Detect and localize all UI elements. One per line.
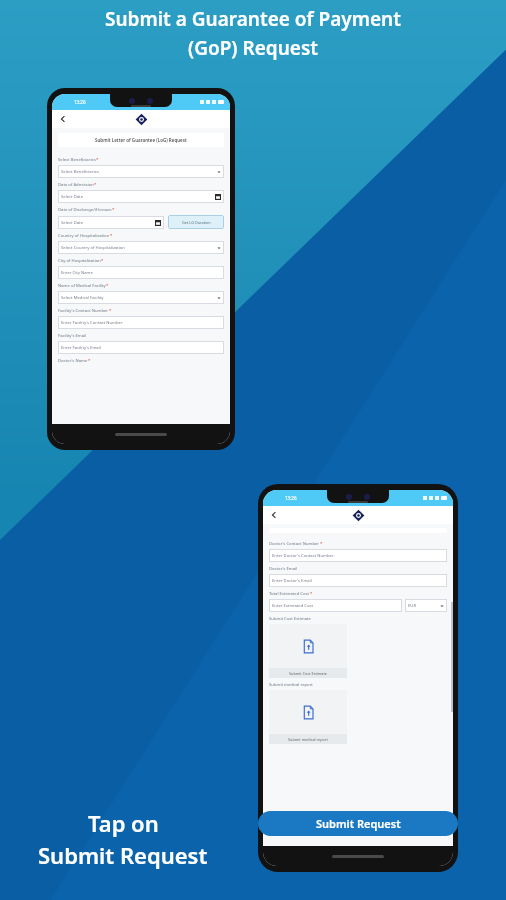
staticText: Submit Request bbox=[316, 816, 401, 831]
staticText: * bbox=[88, 358, 91, 364]
staticText: Enter Doctor's Contact Number bbox=[272, 553, 444, 559]
staticText: * bbox=[94, 182, 97, 188]
staticText: Facility's Contact Number bbox=[58, 308, 109, 314]
staticText: * bbox=[106, 283, 109, 289]
staticText: 13:26 bbox=[285, 495, 297, 501]
staticText: Submit a Guarantee of Payment bbox=[105, 6, 401, 32]
button[interactable]: Select Country of Hospitalization bbox=[58, 241, 224, 254]
button[interactable]: Select Beneficiaries bbox=[58, 165, 224, 178]
staticText: 13:26 bbox=[74, 99, 86, 105]
button[interactable]: EUR bbox=[405, 599, 447, 612]
staticText: Doctor's Email bbox=[269, 566, 298, 572]
button[interactable]: Select Medical Facility bbox=[58, 291, 224, 304]
staticText: Submit Cost Estimate bbox=[289, 671, 327, 676]
staticText: Get LG Duration bbox=[182, 220, 211, 225]
staticText: Name of Medical Facility bbox=[58, 283, 106, 289]
other: Pick date bbox=[155, 220, 161, 226]
button[interactable]: Enter City Name bbox=[58, 266, 224, 279]
button[interactable]: Select Date bbox=[58, 216, 164, 229]
button[interactable]: Submit Cost Estimate bbox=[269, 624, 347, 668]
staticText: Submit Letter of Guarantee (LoG) Request bbox=[95, 137, 187, 143]
staticText: Select Beneficiaries bbox=[58, 157, 96, 163]
staticText: Doctor's Contact Number bbox=[269, 541, 320, 547]
button[interactable]: Select Date bbox=[58, 190, 224, 203]
staticText: Facility's Email bbox=[58, 333, 87, 339]
staticText: Submit Cost Estimate bbox=[269, 616, 311, 622]
staticText: Submit medical report bbox=[288, 737, 328, 742]
staticText: Select Country of Hospitalization bbox=[61, 245, 217, 251]
staticText: Country of Hospitalization bbox=[58, 233, 110, 239]
button[interactable]: Enter Doctor's Email bbox=[269, 574, 447, 587]
button[interactable]: Submit Cost Estimate bbox=[269, 668, 347, 678]
staticText: EUR bbox=[408, 603, 440, 609]
staticText: * bbox=[109, 308, 112, 314]
staticText: * bbox=[310, 591, 313, 597]
staticText: Doctor's Name bbox=[58, 358, 88, 364]
button[interactable]: Back bbox=[56, 112, 70, 126]
staticText: Date of Discharge/if known bbox=[58, 207, 112, 213]
staticText: Select Date bbox=[61, 220, 155, 226]
staticText: Enter Facility's Contact Number bbox=[61, 320, 221, 326]
staticText: Tap on bbox=[88, 808, 159, 838]
staticText: Enter Facility's Email bbox=[61, 345, 221, 351]
staticText: Select Beneficiaries bbox=[61, 169, 217, 175]
staticText: Total Estimated Cost bbox=[269, 591, 310, 597]
staticText: City of Hospitalization bbox=[58, 258, 101, 264]
staticText: * bbox=[101, 258, 104, 264]
staticText: Date of Admission bbox=[58, 182, 94, 188]
staticText: Submit Request bbox=[38, 840, 208, 870]
staticText: Select Medical Facility bbox=[61, 295, 217, 301]
button[interactable]: Submit medical report bbox=[269, 690, 347, 734]
button[interactable]: Get LG Duration bbox=[168, 215, 224, 229]
staticText: Enter Doctor's Email bbox=[272, 578, 444, 584]
button[interactable]: Submit medical report bbox=[269, 734, 347, 744]
staticText: * bbox=[96, 157, 99, 163]
button[interactable]: Enter Facility's Email bbox=[58, 341, 224, 354]
other: Pick date bbox=[215, 194, 221, 200]
staticText: * bbox=[112, 207, 115, 213]
staticText: (GoP) Request bbox=[188, 35, 318, 61]
staticText: Select Date bbox=[61, 194, 215, 200]
staticText: * bbox=[320, 541, 323, 547]
button[interactable]: Enter Doctor's Contact Number bbox=[269, 549, 447, 562]
staticText: Submit medical report bbox=[269, 682, 313, 688]
staticText: * bbox=[110, 233, 113, 239]
button[interactable]: Back bbox=[267, 508, 281, 522]
button[interactable]: Submit Request bbox=[258, 811, 458, 836]
staticText: Enter Estimated Cost bbox=[272, 603, 399, 609]
button[interactable]: Enter Facility's Contact Number bbox=[58, 316, 224, 329]
staticText: Enter City Name bbox=[61, 270, 221, 276]
button[interactable]: Enter Estimated Cost bbox=[269, 599, 402, 612]
